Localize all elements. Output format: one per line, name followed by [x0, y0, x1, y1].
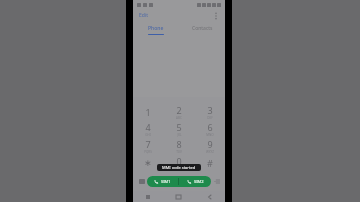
button[interactable]: SIM2 — [179, 176, 211, 187]
staticText: MMI code started — [162, 165, 196, 170]
button[interactable]: Hide dialpad — [136, 176, 147, 187]
button[interactable]: 1 — [133, 103, 163, 120]
staticText: ∗ — [144, 158, 152, 168]
staticText: 5 — [176, 121, 182, 133]
button[interactable]: 0 — [163, 154, 194, 171]
staticText: 2 — [176, 104, 182, 116]
staticText: TUV — [176, 150, 182, 154]
staticText: # — [207, 157, 213, 169]
staticText: 0 — [176, 155, 182, 167]
staticText: ABC — [176, 116, 182, 120]
button[interactable]: More options — [211, 11, 220, 20]
staticText: Phone — [148, 25, 164, 32]
staticText: 6 — [207, 121, 213, 133]
staticText: DEF — [207, 116, 213, 120]
button[interactable]: Edit — [138, 11, 149, 20]
button[interactable]: 7 — [133, 137, 163, 154]
staticText: 1 — [145, 106, 151, 118]
staticText: Edit — [139, 12, 148, 19]
button[interactable]: 8 — [163, 137, 194, 154]
staticText: MNO — [206, 133, 214, 137]
button[interactable]: 4 — [133, 120, 163, 137]
button[interactable]: 2 — [163, 103, 194, 120]
button[interactable]: SIM1 — [147, 176, 178, 187]
staticText: Contacts — [192, 25, 213, 32]
button[interactable]: Home — [163, 191, 194, 202]
button[interactable]: # — [194, 154, 225, 171]
staticText: WXYZ — [206, 150, 214, 154]
button[interactable]: 6 — [194, 120, 225, 137]
button[interactable]: 3 — [194, 103, 225, 120]
staticText: 4 — [145, 121, 151, 133]
staticText: 9 — [207, 138, 213, 150]
button[interactable]: Recents — [133, 191, 163, 202]
staticText: 8 — [176, 138, 182, 150]
button[interactable]: Contacts — [179, 22, 225, 37]
staticText: + — [178, 167, 180, 171]
staticText: SIM2 — [194, 179, 204, 184]
staticText: JKL — [177, 133, 182, 137]
button[interactable]: Back — [194, 191, 225, 202]
button[interactable]: Phone — [133, 22, 179, 37]
staticText: PQRS — [144, 150, 152, 154]
staticText: 3 — [207, 104, 213, 116]
staticText: GHI — [145, 133, 151, 137]
button[interactable]: ∗ — [133, 154, 163, 171]
staticText: 7 — [145, 138, 151, 150]
button[interactable]: 5 — [163, 120, 194, 137]
staticText: SIM1 — [161, 179, 171, 184]
button[interactable]: 9 — [194, 137, 225, 154]
button[interactable]: Delete — [211, 176, 222, 187]
